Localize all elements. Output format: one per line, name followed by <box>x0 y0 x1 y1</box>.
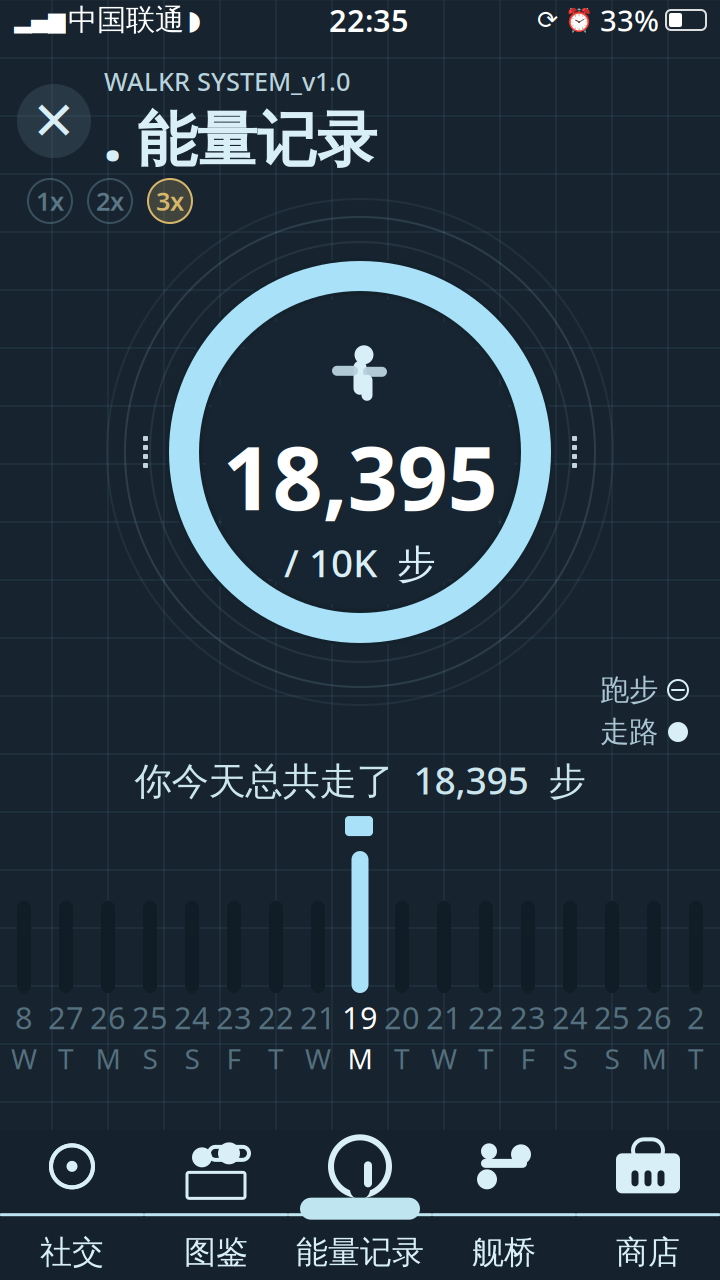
staticText: ◗ <box>187 5 201 35</box>
button[interactable]: 2x <box>86 177 134 225</box>
button[interactable] <box>633 843 675 993</box>
staticText: 22 <box>258 997 294 1038</box>
staticText: 25 <box>132 997 168 1038</box>
staticText: 18,395 <box>222 418 497 535</box>
button[interactable]: 3x <box>146 177 194 225</box>
staticText: 21 <box>426 997 462 1038</box>
staticText: 中国联通 <box>68 2 184 38</box>
button[interactable]: 1x <box>26 177 74 225</box>
button[interactable] <box>381 843 423 993</box>
staticText: M <box>95 1040 120 1077</box>
staticText: 8 <box>15 997 33 1038</box>
staticText: 33% <box>600 0 659 39</box>
staticText: T <box>478 1040 494 1077</box>
button[interactable] <box>87 843 129 993</box>
staticText: W <box>305 1040 331 1077</box>
staticText: . 能量记录 <box>104 98 377 178</box>
staticText: M <box>641 1040 666 1077</box>
staticText: T <box>394 1040 410 1077</box>
button[interactable] <box>213 843 255 993</box>
staticText: 商店 <box>616 1233 680 1272</box>
button[interactable]: 能量记录 <box>288 1130 432 1280</box>
staticText: 21 <box>300 997 336 1038</box>
button[interactable]: Close <box>12 79 96 163</box>
staticText: 19 <box>342 997 378 1038</box>
button[interactable] <box>507 843 549 993</box>
staticText: / 10K 步 <box>284 537 436 588</box>
staticText: ⟳ <box>537 6 558 34</box>
button[interactable] <box>45 843 87 993</box>
staticText: M <box>347 1040 372 1077</box>
staticText: 26 <box>636 997 672 1038</box>
staticText: T <box>58 1040 74 1077</box>
button[interactable]: 社交 <box>0 1130 144 1280</box>
button[interactable]: 图鉴 <box>144 1130 288 1280</box>
staticText: T <box>688 1040 704 1077</box>
staticText: S <box>604 1040 619 1077</box>
staticText: F <box>520 1040 535 1077</box>
button[interactable] <box>171 843 213 993</box>
staticText: 23 <box>510 997 546 1038</box>
button[interactable] <box>339 843 381 993</box>
staticText: F <box>226 1040 241 1077</box>
staticText: 24 <box>552 997 588 1038</box>
staticText: 26 <box>90 997 126 1038</box>
staticText: 24 <box>174 997 210 1038</box>
button[interactable] <box>129 843 171 993</box>
staticText: S <box>184 1040 199 1077</box>
staticText: 能量记录 <box>296 1233 424 1272</box>
button[interactable] <box>297 843 339 993</box>
button[interactable] <box>255 843 297 993</box>
button[interactable] <box>465 843 507 993</box>
staticText: S <box>562 1040 577 1077</box>
button[interactable] <box>549 843 591 993</box>
staticText: 3x <box>156 184 184 218</box>
button[interactable] <box>675 843 717 993</box>
staticText: T <box>268 1040 284 1077</box>
staticText: WALKR SYSTEM_v1.0 <box>104 64 350 98</box>
staticText: ▂▄▆ <box>14 7 65 33</box>
staticText: 1x <box>36 184 64 218</box>
staticText: 22:35 <box>329 0 409 40</box>
staticText: ✕ <box>31 91 76 151</box>
staticText: W <box>431 1040 457 1077</box>
button[interactable]: 舰桥 <box>432 1130 576 1280</box>
staticText: 23 <box>216 997 252 1038</box>
staticText: 舰桥 <box>472 1233 536 1272</box>
button[interactable]: 商店 <box>576 1130 720 1280</box>
staticText: 2 <box>687 997 705 1038</box>
button[interactable] <box>591 843 633 993</box>
staticText: ⏰ <box>565 7 593 33</box>
staticText: S <box>142 1040 157 1077</box>
staticText: 25 <box>594 997 630 1038</box>
staticText: 2x <box>96 184 124 218</box>
staticText: 跑步 <box>600 672 658 708</box>
staticText: W <box>11 1040 37 1077</box>
staticText: 图鉴 <box>184 1233 248 1272</box>
staticText: 社交 <box>40 1233 104 1272</box>
staticText: 你今天总共走了 18,395 步 <box>134 755 585 805</box>
button[interactable] <box>423 843 465 993</box>
staticText: 20 <box>384 997 420 1038</box>
staticText: 27 <box>48 997 84 1038</box>
staticText: 22 <box>468 997 504 1038</box>
button[interactable] <box>3 843 45 993</box>
staticText: 走路 <box>600 714 658 750</box>
